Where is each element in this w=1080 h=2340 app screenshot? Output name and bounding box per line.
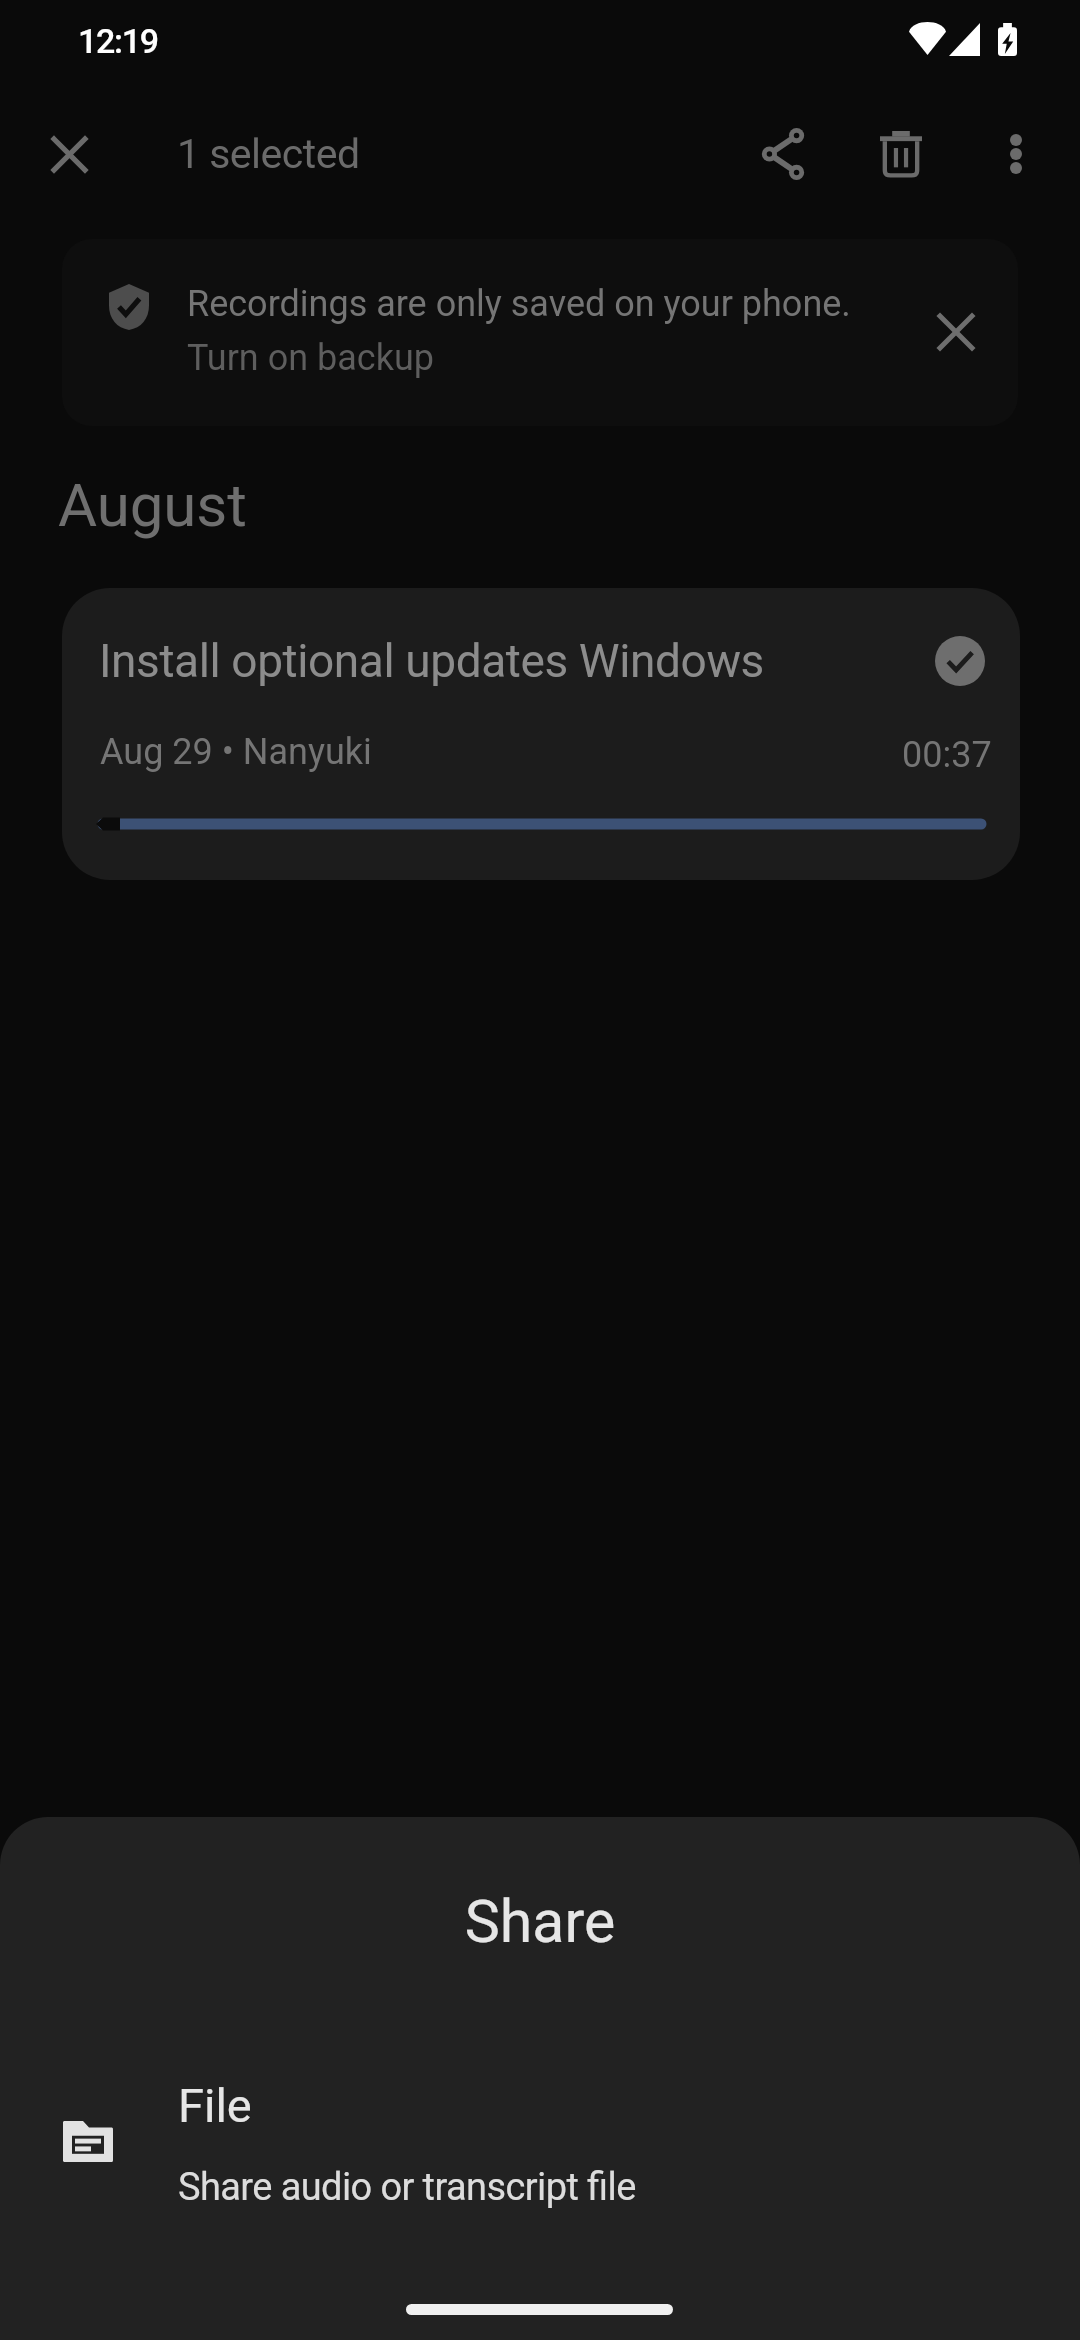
staticText: 12:19 — [78, 21, 158, 61]
button[interactable]: Delete — [853, 106, 949, 202]
button[interactable]: Selected — [935, 636, 985, 686]
button[interactable]: More options — [968, 106, 1064, 202]
staticText: Share audio or transcript file — [178, 2165, 636, 2210]
staticText: Aug 29 • Nanyuki — [100, 731, 372, 773]
staticText: File — [178, 2078, 252, 2133]
staticText: Recordings are only saved on your phone. — [187, 283, 851, 325]
button[interactable]: Install optional updates Windows — [62, 588, 1020, 880]
button[interactable]: File — [0, 2047, 1080, 2192]
button[interactable]: Dismiss — [912, 288, 1000, 376]
staticText: 1 selected — [177, 130, 360, 178]
staticText: Turn on backup — [187, 337, 434, 379]
staticText: 00:37 — [902, 734, 992, 776]
staticText: August — [58, 470, 247, 540]
staticText: Share — [0, 1887, 1080, 1956]
button[interactable]: Recordings are only saved on your phone. — [62, 239, 1018, 426]
staticText: Install optional updates Windows — [99, 634, 764, 688]
button[interactable]: Close selection — [21, 106, 117, 202]
button[interactable]: Share — [735, 106, 831, 202]
